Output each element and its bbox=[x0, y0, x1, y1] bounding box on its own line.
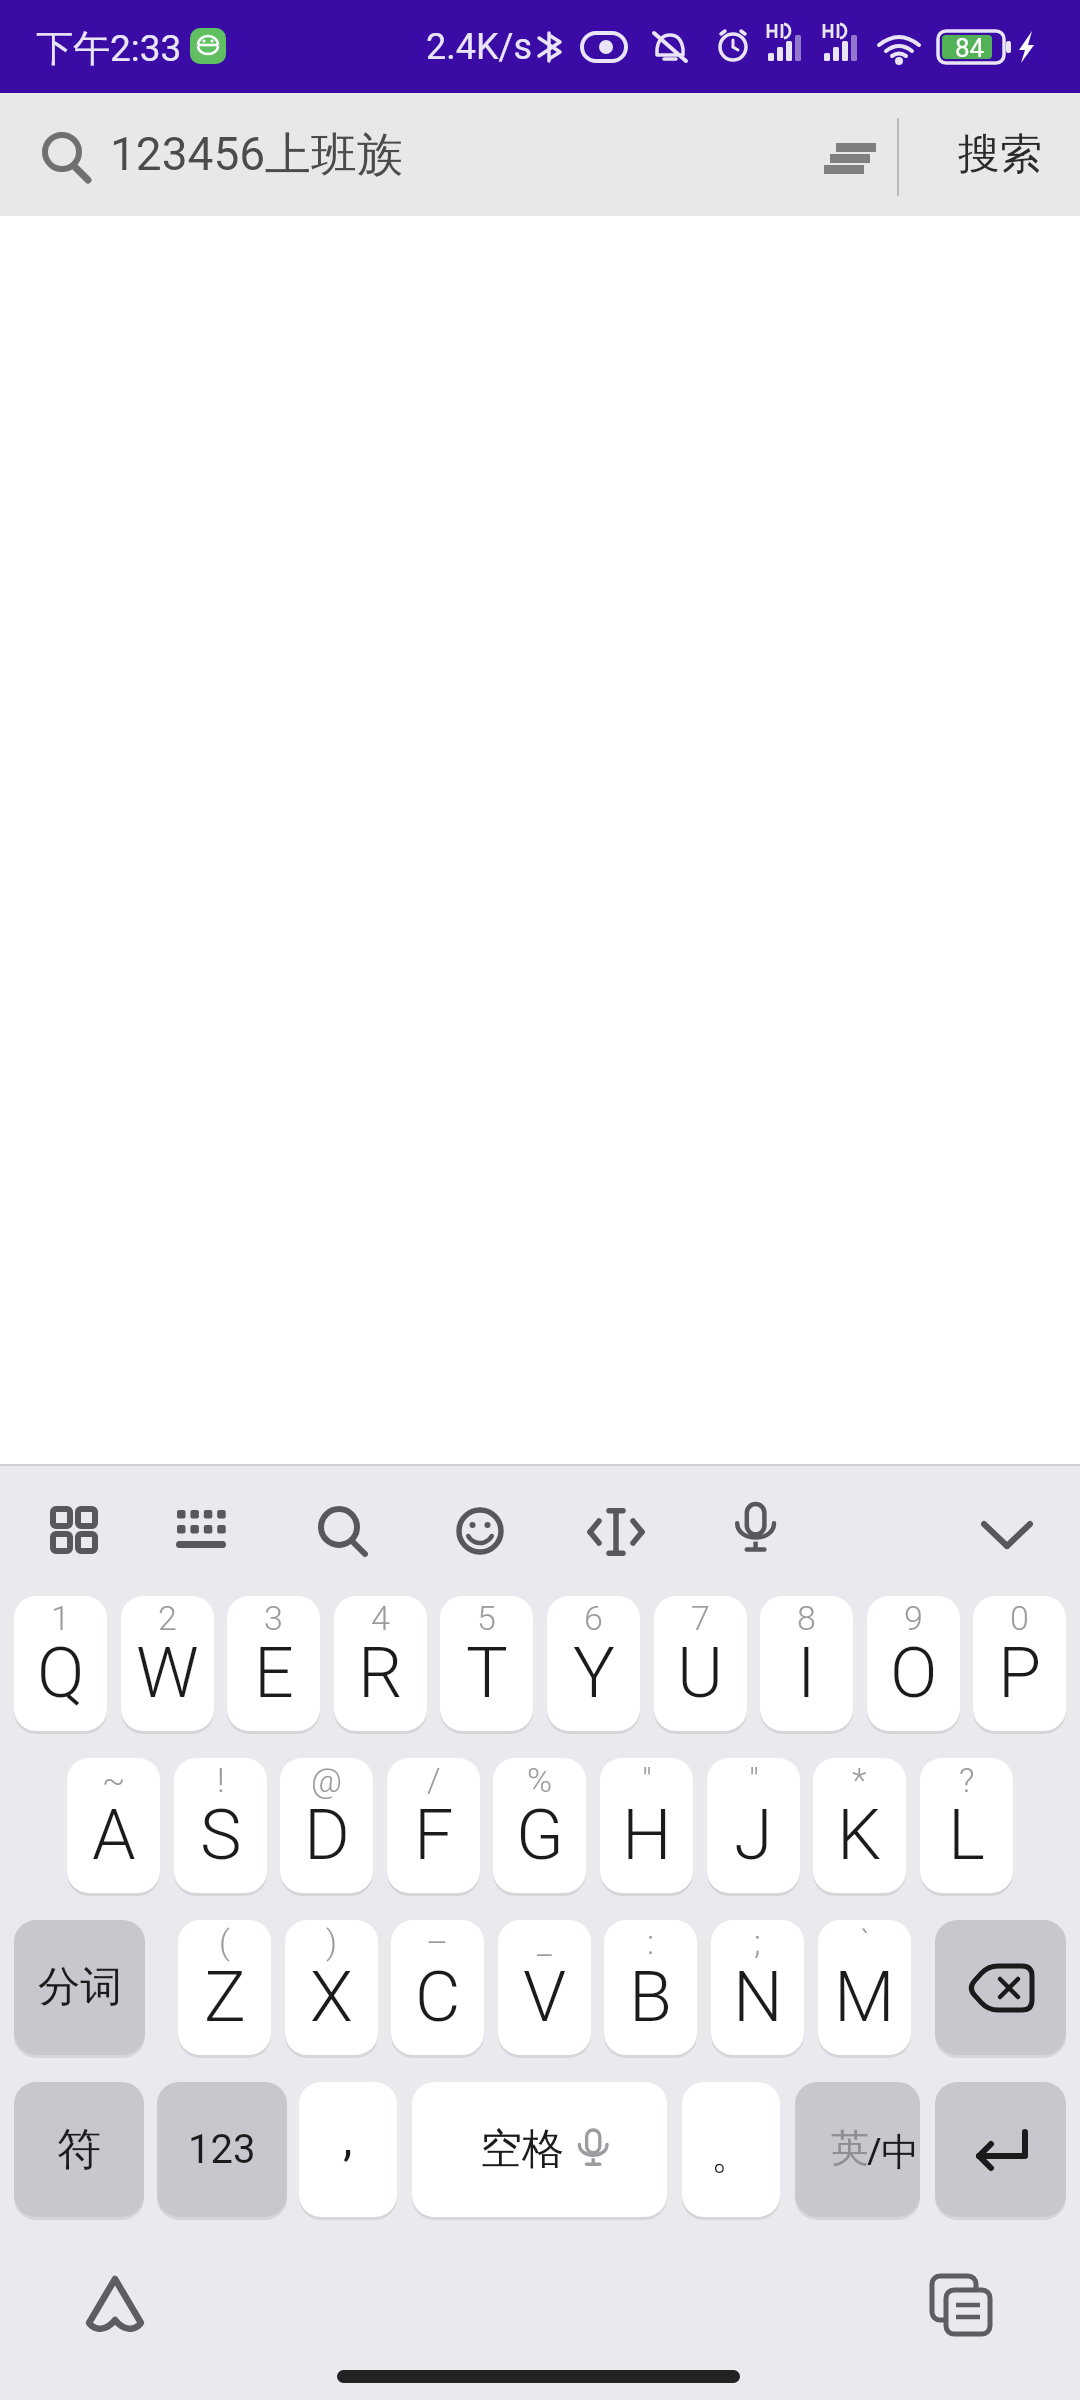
staticText: 1 bbox=[51, 1598, 70, 1638]
staticText: 6 bbox=[584, 1598, 603, 1638]
staticText: N bbox=[733, 1956, 783, 2038]
staticText: 7 bbox=[691, 1598, 710, 1638]
button[interactable]: 6 bbox=[547, 1596, 640, 1731]
staticText: ` bbox=[860, 1922, 870, 1962]
button[interactable]: 分词 bbox=[14, 1920, 145, 2055]
staticText: W bbox=[136, 1632, 199, 1714]
button[interactable]: " bbox=[707, 1758, 800, 1893]
staticText: " bbox=[642, 1760, 652, 1800]
button[interactable]: , bbox=[299, 2082, 397, 2217]
staticText: 84 bbox=[955, 33, 985, 63]
button[interactable]: 7 bbox=[654, 1596, 747, 1731]
staticText: ? bbox=[959, 1760, 975, 1800]
button[interactable]: 4 bbox=[334, 1596, 427, 1731]
staticText: – bbox=[426, 1922, 449, 1962]
button[interactable]: 3 bbox=[227, 1596, 320, 1731]
staticText: Q bbox=[37, 1632, 85, 1714]
button[interactable] bbox=[982, 1522, 1032, 1550]
button[interactable]: * bbox=[813, 1758, 906, 1893]
button[interactable] bbox=[85, 2274, 147, 2336]
staticText: " bbox=[749, 1760, 759, 1800]
staticText: 英 bbox=[831, 2124, 869, 2172]
button[interactable] bbox=[818, 137, 882, 177]
button[interactable] bbox=[734, 1504, 778, 1560]
button[interactable]: – bbox=[391, 1920, 484, 2055]
staticText: L bbox=[948, 1794, 985, 1876]
button[interactable]: " bbox=[600, 1758, 693, 1893]
staticText: % bbox=[527, 1760, 553, 1800]
button[interactable] bbox=[456, 1507, 504, 1555]
button[interactable]: ! bbox=[174, 1758, 267, 1893]
staticText: Y bbox=[573, 1632, 615, 1714]
button[interactable] bbox=[935, 2082, 1066, 2217]
staticText: 空格 bbox=[480, 2123, 564, 2176]
button[interactable]: _ bbox=[498, 1920, 591, 2055]
staticText: M bbox=[834, 1956, 895, 2038]
button[interactable]: 空格 bbox=[412, 2082, 667, 2217]
button[interactable]: ~ bbox=[67, 1758, 160, 1893]
button[interactable]: 符 bbox=[14, 2082, 144, 2217]
staticText: 符 bbox=[57, 2122, 101, 2177]
staticText: 2.4K/s bbox=[426, 26, 532, 68]
button[interactable] bbox=[935, 1920, 1066, 2055]
staticText: S bbox=[200, 1794, 242, 1876]
staticText: ~ bbox=[102, 1760, 126, 1800]
staticText: I bbox=[797, 1632, 816, 1714]
staticText: O bbox=[890, 1632, 938, 1714]
button[interactable] bbox=[315, 1504, 371, 1560]
button[interactable] bbox=[930, 2274, 1000, 2338]
staticText: E bbox=[254, 1632, 294, 1714]
button[interactable]: 123 bbox=[157, 2082, 287, 2217]
staticText: T bbox=[466, 1632, 508, 1714]
staticText: 3 bbox=[264, 1598, 283, 1638]
button[interactable]: 。 bbox=[682, 2082, 780, 2217]
staticText: U bbox=[677, 1632, 724, 1714]
staticText: * bbox=[852, 1760, 867, 1800]
button[interactable]: ; bbox=[711, 1920, 804, 2055]
button[interactable]: 8 bbox=[760, 1596, 853, 1731]
staticText: F bbox=[414, 1794, 454, 1876]
staticText: 123456上班族 bbox=[110, 126, 404, 184]
button[interactable]: 1 bbox=[14, 1596, 107, 1731]
button[interactable]: % bbox=[493, 1758, 586, 1893]
button[interactable]: 英 bbox=[795, 2082, 920, 2217]
staticText: 。 bbox=[711, 2129, 751, 2179]
button[interactable] bbox=[176, 1510, 228, 1552]
staticText: R bbox=[358, 1632, 403, 1714]
staticText: / bbox=[427, 1760, 441, 1800]
staticText: D bbox=[304, 1794, 350, 1876]
staticText: K bbox=[837, 1794, 882, 1876]
staticText: 分词 bbox=[38, 1961, 122, 2014]
button[interactable] bbox=[590, 1508, 642, 1556]
button[interactable]: 2 bbox=[121, 1596, 214, 1731]
staticText: 5 bbox=[477, 1598, 496, 1638]
staticText: ! bbox=[217, 1760, 225, 1800]
button[interactable]: ` bbox=[818, 1920, 911, 2055]
button[interactable]: ( bbox=[178, 1920, 271, 2055]
button[interactable]: 5 bbox=[440, 1596, 533, 1731]
staticText: ( bbox=[219, 1922, 230, 1962]
button[interactable]: : bbox=[604, 1920, 697, 2055]
button[interactable]: @ bbox=[280, 1758, 373, 1893]
button[interactable]: 搜索 bbox=[920, 93, 1080, 216]
staticText: 8 bbox=[797, 1598, 816, 1638]
staticText: 2 bbox=[158, 1598, 177, 1638]
button[interactable]: 9 bbox=[867, 1596, 960, 1731]
staticText: _ bbox=[537, 1922, 552, 1962]
button[interactable] bbox=[50, 1506, 98, 1554]
staticText: 123 bbox=[188, 2126, 256, 2173]
staticText: G bbox=[516, 1794, 564, 1876]
staticText: C bbox=[415, 1956, 461, 2038]
button[interactable]: ? bbox=[920, 1758, 1013, 1893]
staticText: : bbox=[647, 1922, 655, 1962]
button[interactable]: / bbox=[387, 1758, 480, 1893]
staticText: B bbox=[629, 1956, 672, 2038]
button[interactable]: 0 bbox=[973, 1596, 1066, 1731]
staticText: H bbox=[622, 1794, 672, 1876]
staticText: 搜索 bbox=[958, 128, 1042, 181]
staticText: , bbox=[343, 2110, 353, 2166]
staticText: 0 bbox=[1010, 1598, 1029, 1638]
staticText: @ bbox=[311, 1760, 343, 1800]
staticText: J bbox=[734, 1794, 773, 1876]
button[interactable]: ) bbox=[285, 1920, 378, 2055]
